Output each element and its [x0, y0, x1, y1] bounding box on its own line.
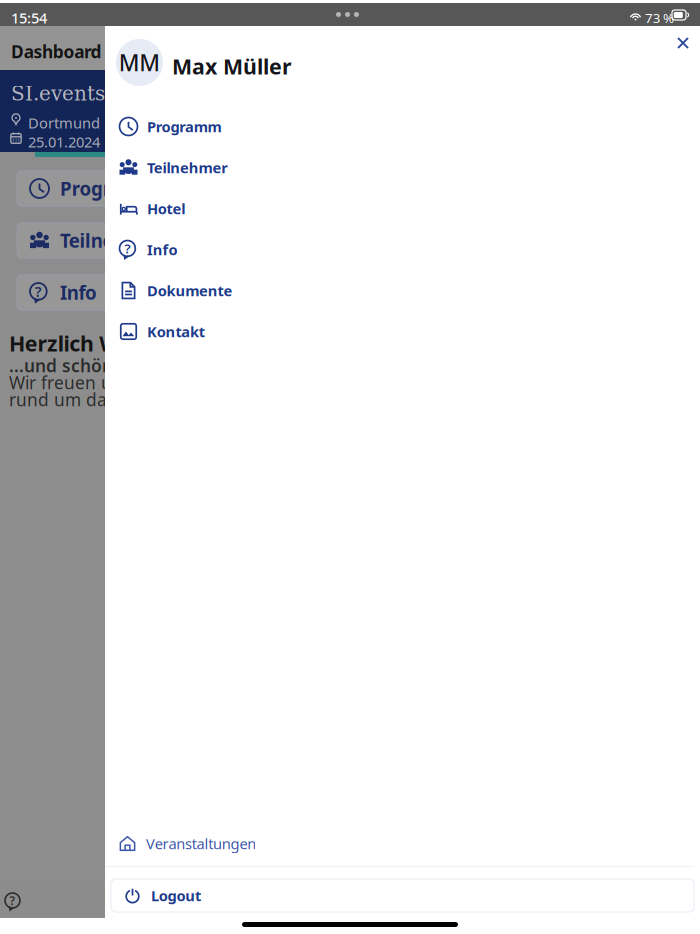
button[interactable]: Teilnehmer	[105, 147, 700, 188]
staticText: 73 %	[645, 9, 674, 27]
staticText: Kontakt	[147, 322, 205, 341]
staticText: Max Müller	[172, 52, 292, 80]
staticText: Wir freuen uns auf ein spannendes Progra…	[9, 371, 391, 394]
staticText: Hotel	[147, 199, 185, 218]
staticText: Dashboard	[11, 40, 102, 63]
staticText: ?	[35, 282, 42, 301]
staticText: rund um das Event.	[9, 388, 171, 411]
staticText: Programm	[147, 117, 222, 136]
staticText: Info	[147, 240, 177, 259]
button[interactable]: Dokumente	[105, 270, 700, 311]
button[interactable]: Programm	[105, 106, 700, 147]
button[interactable]: Close menu	[668, 28, 698, 58]
staticText: Teilnehmer	[147, 158, 228, 177]
staticText: Veranstaltungen	[146, 834, 256, 853]
button[interactable]: Logout	[111, 879, 694, 912]
staticText: MM	[119, 47, 160, 77]
staticText: Herzlich Willkommen!	[9, 329, 236, 357]
staticText: Dortmund	[28, 113, 100, 132]
staticText: SI.events App	[11, 82, 151, 105]
staticText: 15:54	[11, 8, 47, 27]
staticText: Logout	[151, 886, 201, 905]
staticText: ...und schön, dass Sie dabei sind.	[9, 354, 290, 377]
button[interactable]: ?	[105, 229, 700, 270]
staticText: 25.01.2024	[28, 132, 100, 151]
staticText: ?	[9, 892, 15, 908]
staticText: Dokumente	[147, 281, 232, 300]
staticText: Info	[60, 280, 97, 305]
button[interactable]: Veranstaltungen	[105, 821, 700, 866]
staticText: ?	[124, 240, 130, 257]
button[interactable]: Kontakt	[105, 311, 700, 352]
button[interactable]: Hotel	[105, 188, 700, 229]
staticText: Programm	[60, 176, 157, 201]
staticText: Teilnehmer	[60, 228, 161, 253]
